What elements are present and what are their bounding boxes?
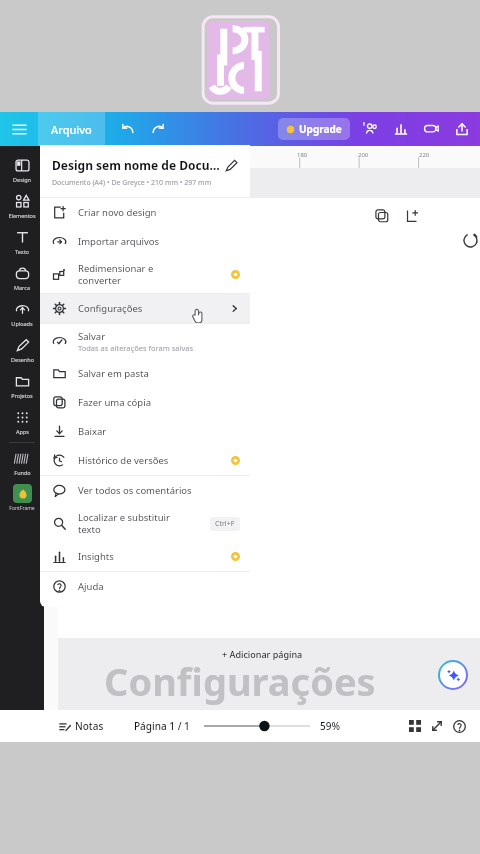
staticText: Redimensionar e converter xyxy=(78,262,154,287)
button[interactable]: Marca xyxy=(0,260,44,296)
staticText: Desenho xyxy=(11,356,34,363)
button[interactable]: Baixar xyxy=(40,417,250,446)
staticText: Baixar xyxy=(78,425,107,438)
button[interactable]: Present xyxy=(416,114,446,144)
button[interactable]: Insights xyxy=(40,542,250,571)
button[interactable]: Grid view xyxy=(404,715,426,737)
button[interactable] xyxy=(204,718,310,734)
staticText: Configurações xyxy=(104,655,376,707)
button[interactable]: Notas xyxy=(54,716,108,736)
staticText: Ajuda xyxy=(78,580,104,593)
button[interactable]: Desenho xyxy=(0,332,44,368)
button[interactable]: Design xyxy=(0,152,44,188)
staticText: Importar arquivos xyxy=(78,235,160,248)
staticText: Fundo xyxy=(14,469,31,476)
staticText: Página 1 / 1 xyxy=(134,719,190,733)
staticText: Configurações xyxy=(78,302,143,315)
button[interactable]: Undo xyxy=(113,114,143,144)
staticText: 220 xyxy=(419,151,430,159)
button[interactable]: Redo xyxy=(143,114,173,144)
staticText: Insights xyxy=(78,550,114,563)
staticText: Marca xyxy=(14,284,30,291)
staticText: Apps xyxy=(16,428,29,435)
button[interactable]: Fazer uma cópia xyxy=(40,388,250,417)
staticText: Texto xyxy=(15,248,29,255)
staticText: Todas as alterações foram salvas xyxy=(78,343,194,353)
staticText: Fazer uma cópia xyxy=(78,396,151,409)
staticText: Salvar em pasta xyxy=(78,367,149,380)
staticText: Projetos xyxy=(11,392,33,399)
button[interactable]: Refresh xyxy=(456,226,480,254)
staticText: Notas xyxy=(75,719,104,733)
button[interactable]: Texto xyxy=(0,224,44,260)
staticText: 180 xyxy=(297,151,308,159)
button[interactable]: Upgrade xyxy=(278,118,350,140)
button[interactable]: Criar novo design xyxy=(40,198,250,227)
button[interactable]: Arquivo xyxy=(38,112,105,146)
button[interactable]: Fullscreen xyxy=(426,715,448,737)
button[interactable]: Configurações xyxy=(40,294,250,323)
button[interactable]: + Adicionar página xyxy=(222,648,303,660)
button[interactable]: Share with people xyxy=(356,114,386,144)
staticText: Uploads xyxy=(11,320,33,327)
staticText: Arquivo xyxy=(51,122,92,137)
staticText: Design sem nome de Docu… xyxy=(52,157,222,173)
button[interactable]: Rename xyxy=(222,156,240,174)
button[interactable]: Add page xyxy=(404,208,420,224)
button[interactable]: Menu xyxy=(0,112,38,146)
button[interactable]: Ajuda xyxy=(40,572,250,601)
button[interactable]: Fundo xyxy=(0,445,44,481)
button[interactable]: Importar arquivos xyxy=(40,227,250,256)
button[interactable]: FontFrame xyxy=(9,481,35,515)
button[interactable]: Ver todos os comentários xyxy=(40,476,250,505)
staticText: Criar novo design xyxy=(78,206,157,219)
button[interactable]: Salvar xyxy=(40,324,250,359)
button[interactable]: Share xyxy=(446,113,478,145)
staticText: Documento (A4) • De Greyce • 210 mm • 29… xyxy=(52,178,212,188)
staticText: Design xyxy=(13,176,31,183)
staticText: Ver todos os comentários xyxy=(78,484,192,497)
button[interactable]: Localizar e substituir texto xyxy=(40,505,250,542)
button[interactable]: Apps xyxy=(0,404,44,440)
staticText: 59% xyxy=(320,719,340,733)
button[interactable]: Página 1 / 1 xyxy=(134,719,190,733)
staticText: + Adicionar página xyxy=(222,648,303,660)
button[interactable]: Projetos xyxy=(0,368,44,404)
button[interactable]: Redimensionar e converter xyxy=(40,256,250,293)
staticText: Elementos xyxy=(8,212,36,219)
staticText: Upgrade xyxy=(299,122,342,136)
staticText: Localizar e substituir texto xyxy=(78,511,170,536)
button[interactable]: Uploads xyxy=(0,296,44,332)
button[interactable]: Salvar em pasta xyxy=(40,359,250,388)
staticText: Ctrl+F xyxy=(215,519,235,529)
staticText: FontFrame xyxy=(9,505,35,512)
button[interactable]: Duplicate page xyxy=(374,208,390,224)
button[interactable]: Elementos xyxy=(0,188,44,224)
button[interactable]: Insights xyxy=(386,114,416,144)
button[interactable]: Help xyxy=(448,715,470,737)
staticText: Histórico de versões xyxy=(78,454,169,467)
staticText: Salvar xyxy=(78,330,106,343)
staticText: 200 xyxy=(358,151,369,159)
button[interactable]: Histórico de versões xyxy=(40,446,250,475)
button[interactable]: Magic Studio xyxy=(440,662,466,688)
